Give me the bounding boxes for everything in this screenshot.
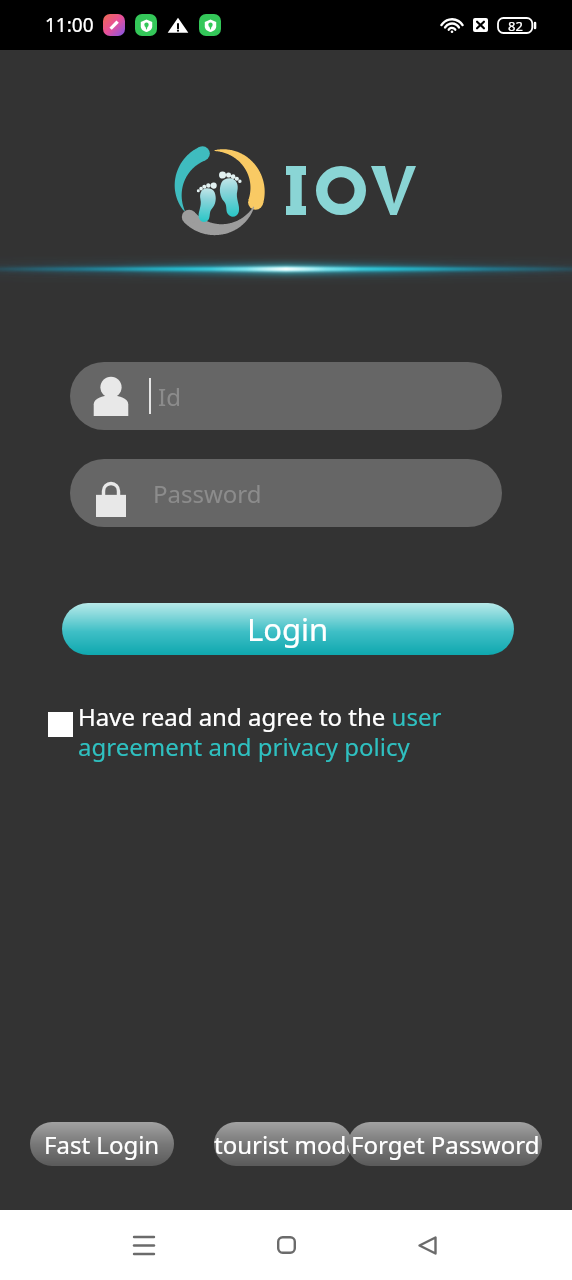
button[interactable]: Login	[62, 603, 514, 655]
button[interactable]: Back	[387, 1210, 467, 1280]
staticText: Login	[247, 608, 329, 650]
button[interactable]: Have read and agree to the user agreemen…	[48, 700, 532, 763]
button[interactable]: Recents	[104, 1210, 184, 1280]
staticText: Have read and agree to the user agreemen…	[78, 700, 532, 763]
button[interactable]: Password	[70, 459, 502, 527]
staticText: Forget Password	[351, 1128, 540, 1161]
button[interactable]: Home	[246, 1210, 326, 1280]
staticText: 82	[508, 17, 523, 34]
staticText: Id	[158, 380, 181, 413]
staticText: Password	[153, 477, 262, 510]
button[interactable]: tourist mode	[214, 1122, 352, 1166]
button[interactable]: Fast Login	[30, 1122, 174, 1166]
staticText: 11:00	[45, 12, 94, 38]
staticText: tourist mode	[214, 1128, 352, 1161]
button[interactable]: Forget Password	[348, 1122, 542, 1166]
staticText: Fast Login	[44, 1128, 160, 1161]
button[interactable]: Id	[70, 362, 502, 430]
